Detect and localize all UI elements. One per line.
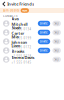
staticText: Emma Davis — [12, 55, 35, 60]
button[interactable]: Skip — [52, 39, 61, 44]
staticText: Liam Brooks — [12, 43, 25, 54]
button[interactable]: Back — [2, 1, 6, 6]
staticText: Mia Johnson — [12, 34, 28, 45]
button[interactable]: Invite — [38, 21, 50, 26]
staticText: Invite — [40, 31, 48, 34]
button[interactable]: Skip — [52, 21, 61, 26]
button[interactable]: Invite — [38, 48, 50, 53]
staticText: Invite — [40, 40, 48, 43]
button[interactable]: Skip — [52, 30, 61, 35]
button[interactable]: Invite — [38, 30, 50, 35]
staticText: +1 555 0172 — [12, 45, 32, 49]
staticText: CONTACTS — [3, 14, 17, 18]
staticText: Skip — [54, 22, 59, 25]
staticText: Invite — [40, 22, 48, 25]
staticText: Skip — [54, 31, 59, 34]
staticText: +1 555 0145 — [12, 61, 32, 64]
staticText: Invite Friends — [7, 1, 34, 7]
staticText: +1 555 0199 — [12, 36, 32, 40]
staticText: Skip — [54, 58, 59, 61]
button[interactable]: Skip — [52, 48, 61, 53]
staticText: Skip — [54, 49, 59, 52]
staticText: Noah Carter — [12, 25, 25, 36]
staticText: Invite — [40, 49, 48, 52]
button[interactable]: Invite — [38, 39, 50, 44]
staticText: Earn credits — [3, 9, 19, 12]
button[interactable]: Skip — [52, 57, 61, 62]
staticText: NEW — [22, 9, 28, 12]
staticText: Ava Mitchell — [12, 16, 28, 27]
staticText: Skip — [54, 40, 59, 43]
staticText: +1 555 0134 — [12, 27, 32, 31]
staticText: +1 555 0118 — [12, 54, 32, 58]
